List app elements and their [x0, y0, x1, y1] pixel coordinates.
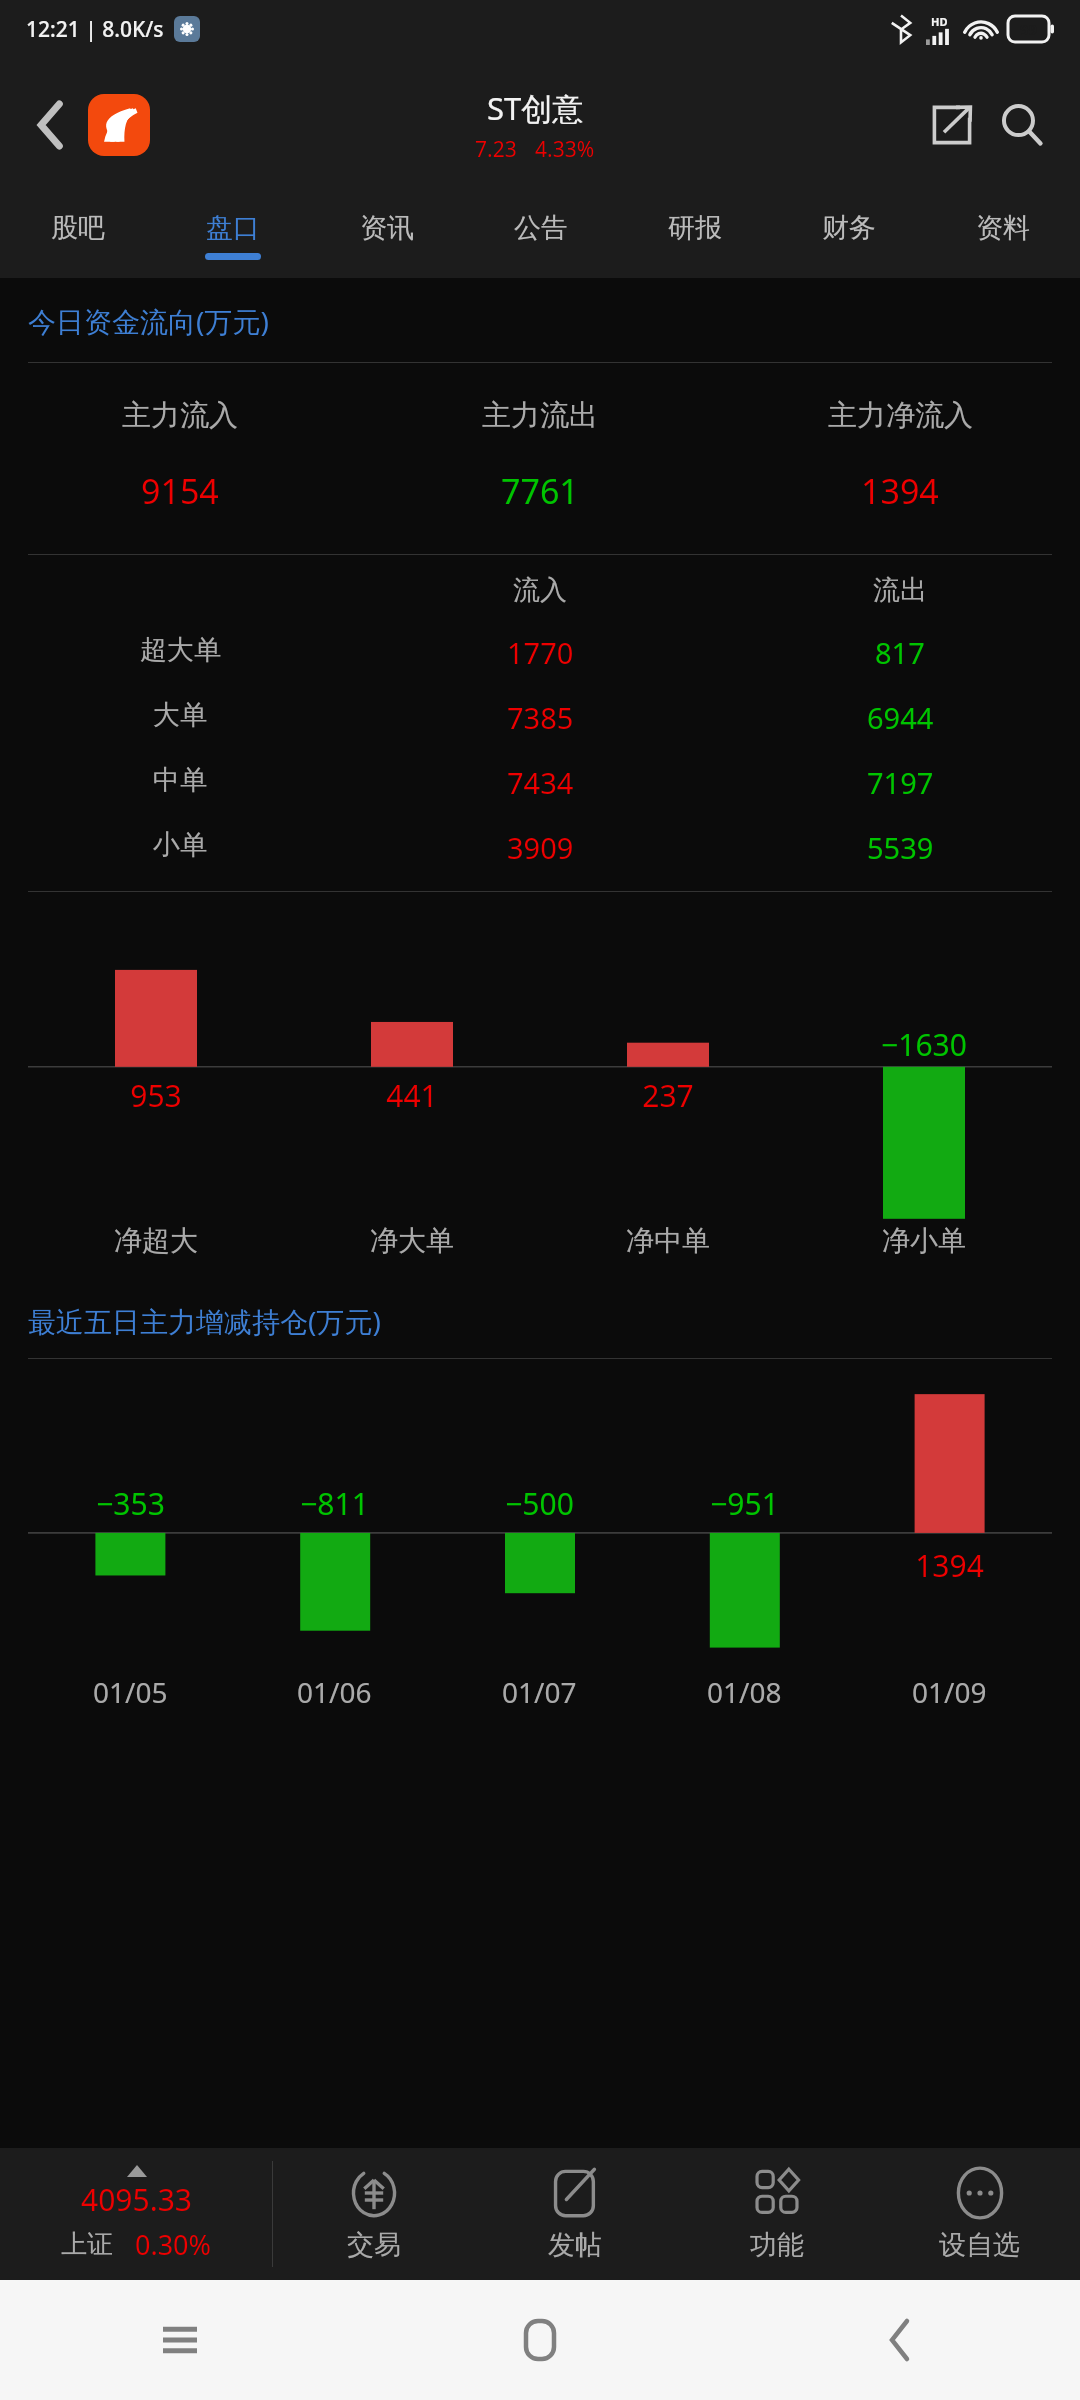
button[interactable]: 资讯: [310, 192, 464, 278]
staticText: −811: [300, 1483, 369, 1524]
staticText: 01/06: [297, 1673, 372, 1711]
staticText: 主力净流入: [828, 397, 973, 434]
staticText: 资料: [976, 211, 1030, 245]
staticText: 441: [386, 1075, 438, 1116]
staticText: 817: [875, 633, 925, 672]
staticText: 今日资金流向(万元): [28, 302, 269, 340]
button[interactable]: 交易: [273, 2148, 474, 2280]
staticText: 流入: [513, 573, 567, 607]
staticText: 超大单: [140, 633, 221, 667]
staticText: 净中单: [626, 1223, 710, 1258]
button[interactable]: 设自选: [878, 2148, 1080, 2280]
button[interactable]: Home: [360, 2280, 720, 2400]
button[interactable]: Search: [990, 93, 1054, 157]
staticText: 中单: [153, 763, 207, 797]
staticText: 7761: [501, 468, 579, 514]
staticText: 净小单: [882, 1223, 966, 1258]
staticText: 研报: [668, 211, 722, 245]
staticText: 主力流出: [482, 397, 598, 434]
button[interactable]: 股吧: [0, 192, 155, 278]
staticText: 发帖: [548, 2228, 602, 2262]
button[interactable]: Recent apps: [0, 2280, 360, 2400]
button[interactable]: 大单: [0, 698, 1080, 737]
staticText: 237: [642, 1075, 694, 1116]
staticText: 01/09: [912, 1673, 987, 1711]
staticText: 最近五日主力增减持仓(万元): [28, 1302, 381, 1340]
staticText: 01/08: [707, 1673, 782, 1711]
staticText: 4.33%: [535, 135, 595, 164]
button[interactable]: 资料: [926, 192, 1080, 278]
staticText: 7434: [507, 763, 574, 802]
button[interactable]: 中单: [0, 763, 1080, 802]
staticText: ST创意: [487, 87, 584, 129]
staticText: 3909: [507, 828, 574, 867]
button[interactable]: Back: [720, 2280, 1080, 2400]
staticText: 1770: [507, 633, 574, 672]
staticText: 净大单: [370, 1223, 454, 1258]
button[interactable]: 研报: [618, 192, 772, 278]
staticText: 12:21 | 8.0K/s: [26, 15, 164, 44]
staticText: −1630: [881, 1024, 967, 1065]
button[interactable]: Back: [20, 94, 82, 156]
staticText: 流出: [873, 573, 927, 607]
staticText: 0.30%: [135, 2226, 212, 2263]
staticText: 设自选: [939, 2228, 1020, 2262]
staticText: 净超大: [114, 1223, 198, 1258]
staticText: 01/05: [93, 1673, 168, 1711]
staticText: −353: [96, 1483, 165, 1524]
staticText: 7197: [867, 763, 934, 802]
staticText: HD: [931, 14, 948, 29]
button[interactable]: 超大单: [0, 633, 1080, 672]
staticText: 盘口: [206, 211, 260, 245]
staticText: 公告: [514, 211, 568, 245]
button[interactable]: App logo: [88, 94, 150, 156]
staticText: 上证: [61, 2228, 113, 2261]
button[interactable]: 发帖: [474, 2148, 676, 2280]
button[interactable]: 功能: [676, 2148, 878, 2280]
staticText: 财务: [822, 211, 876, 245]
staticText: 7.23: [475, 135, 517, 164]
staticText: 交易: [347, 2228, 401, 2262]
button[interactable]: 公告: [464, 192, 618, 278]
staticText: 5539: [867, 828, 934, 867]
button[interactable]: Share: [920, 93, 984, 157]
staticText: 953: [130, 1075, 182, 1116]
staticText: 资讯: [360, 211, 414, 245]
staticText: 6944: [867, 698, 934, 737]
staticText: 主力流入: [122, 397, 238, 434]
staticText: 大单: [153, 698, 207, 732]
staticText: 1394: [915, 1545, 984, 1586]
staticText: −951: [710, 1483, 779, 1524]
staticText: 01/07: [502, 1673, 577, 1711]
staticText: 股吧: [51, 211, 105, 245]
button[interactable]: 4095.33: [0, 2148, 272, 2280]
staticText: 7385: [507, 698, 574, 737]
staticText: −500: [505, 1483, 574, 1524]
staticText: 小单: [153, 828, 207, 862]
button[interactable]: 小单: [0, 828, 1080, 867]
button[interactable]: 财务: [772, 192, 926, 278]
button[interactable]: 盘口: [155, 192, 310, 278]
staticText: 9154: [141, 468, 219, 514]
staticText: 功能: [750, 2228, 804, 2262]
staticText: 1394: [861, 468, 939, 514]
staticText: 4095.33: [81, 2179, 192, 2220]
